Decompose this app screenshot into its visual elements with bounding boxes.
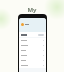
button[interactable]: [19, 63, 46, 68]
button[interactable]: [19, 58, 46, 63]
button[interactable]: See all: [38, 34, 44, 36]
button[interactable]: [19, 53, 46, 58]
button[interactable]: [19, 48, 46, 53]
button[interactable]: [19, 38, 46, 43]
button[interactable]: [19, 43, 46, 48]
staticText: My: [27, 6, 37, 14]
